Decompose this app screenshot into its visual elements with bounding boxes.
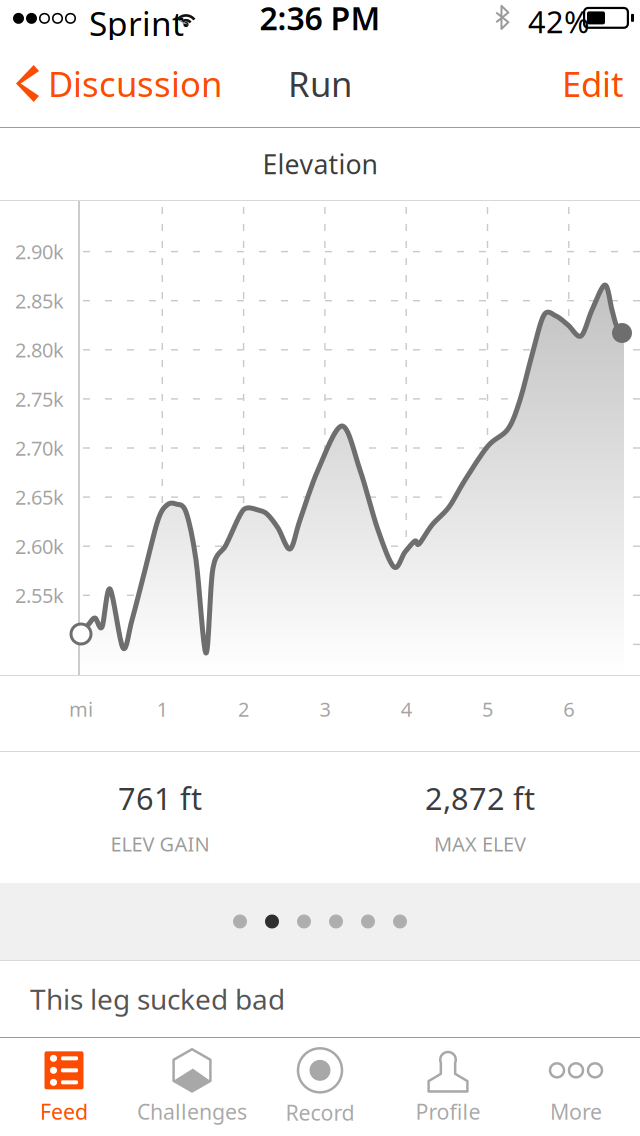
button[interactable]: Challenges <box>128 1038 256 1136</box>
staticText: 6 <box>563 696 574 722</box>
staticText: Record <box>285 1098 354 1127</box>
staticText: mi <box>69 696 93 722</box>
staticText: 2 <box>238 696 249 722</box>
staticText: 2.55k <box>15 582 64 609</box>
staticText: 4 <box>401 696 412 722</box>
staticText: Run <box>288 60 352 106</box>
staticText: MAX ELEV <box>434 831 526 857</box>
staticText: 3 <box>319 696 330 722</box>
staticText: Feed <box>40 1097 88 1126</box>
staticText: 2,872 ft <box>425 778 535 819</box>
staticText: Elevation <box>262 146 377 182</box>
staticText: 5 <box>482 696 493 722</box>
staticText: More <box>550 1097 602 1126</box>
staticText: 2.60k <box>15 533 64 559</box>
staticText: Challenges <box>137 1097 247 1126</box>
staticText: Sprint <box>89 1 184 45</box>
staticText: 2.80k <box>15 336 64 363</box>
staticText: Edit <box>562 60 624 106</box>
staticText: ELEV GAIN <box>110 831 209 857</box>
button[interactable]: Feed <box>0 1038 128 1136</box>
staticText: 2.70k <box>15 435 64 461</box>
staticText: 2:36 PM <box>259 0 380 39</box>
button[interactable]: Record <box>256 1038 384 1136</box>
button[interactable]: Edit <box>562 40 640 127</box>
staticText: 761 ft <box>118 778 202 819</box>
staticText: 2.65k <box>15 484 64 510</box>
staticText: Profile <box>415 1097 480 1126</box>
staticText: Discussion <box>48 60 222 106</box>
staticText: 2.75k <box>15 386 64 412</box>
staticText: 1 <box>157 696 168 722</box>
staticText: 42% <box>528 1 589 42</box>
button[interactable]: More <box>512 1038 640 1136</box>
staticText: 2.90k <box>15 238 64 265</box>
button[interactable]: Profile <box>384 1038 512 1136</box>
button[interactable]: Discussion <box>0 40 222 127</box>
staticText: 2.85k <box>15 287 64 314</box>
staticText: This leg sucked bad <box>30 980 285 1018</box>
